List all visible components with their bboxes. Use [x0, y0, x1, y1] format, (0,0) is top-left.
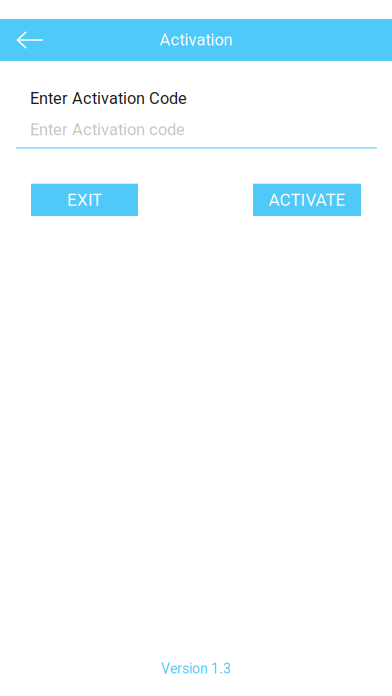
button[interactable]: Back	[8, 19, 52, 61]
staticText: Activation	[159, 30, 232, 50]
staticText: Enter Activation Code	[30, 89, 187, 108]
button[interactable]: Enter Activation code	[16, 120, 377, 149]
staticText: ACTIVATE	[268, 190, 345, 210]
button[interactable]: EXIT	[31, 184, 138, 216]
staticText: Version 1.3	[161, 661, 231, 677]
staticText: Enter Activation code	[30, 120, 185, 139]
button[interactable]: ACTIVATE	[253, 184, 361, 216]
staticText: EXIT	[67, 190, 102, 210]
